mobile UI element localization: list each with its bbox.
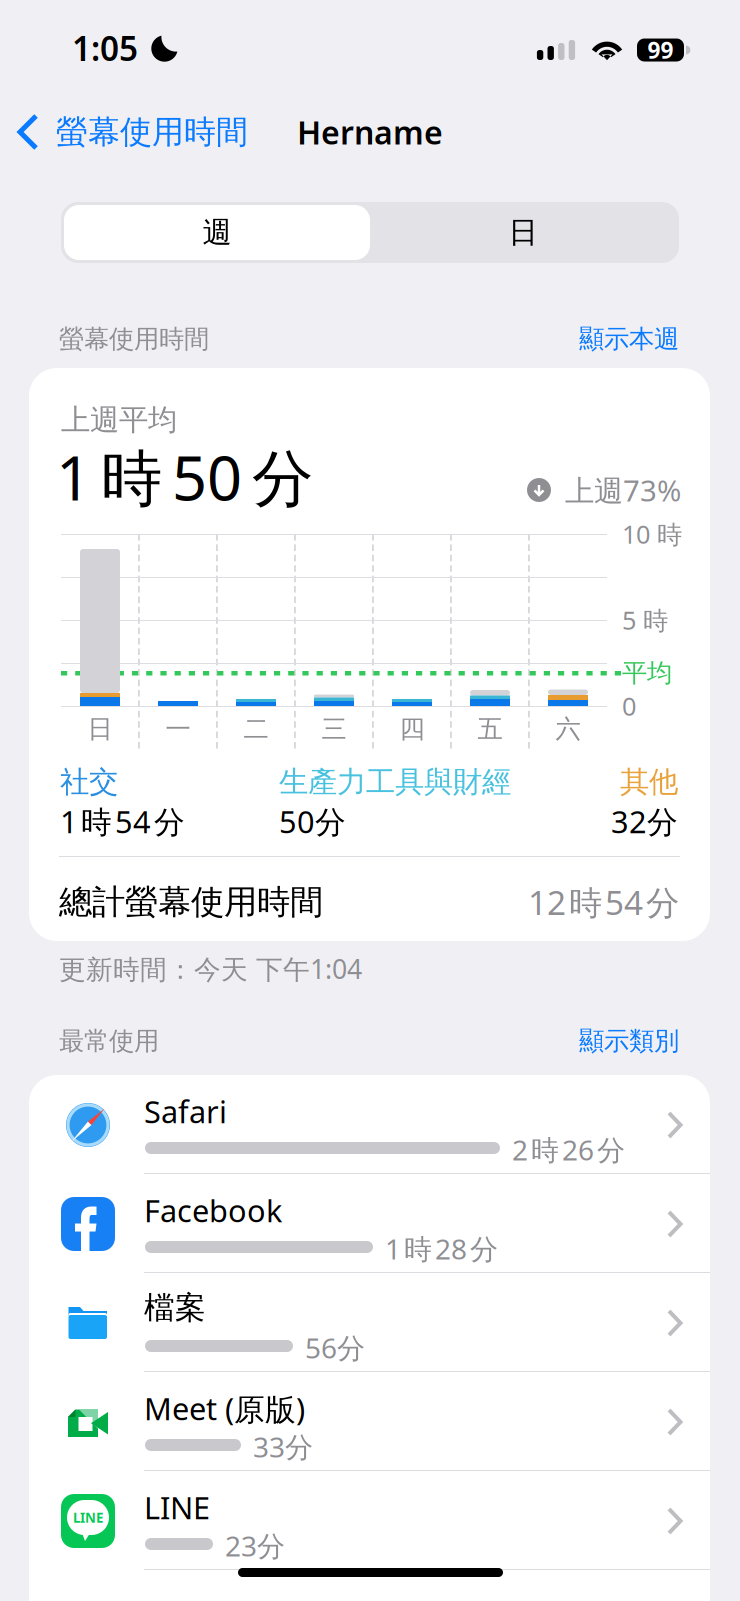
- staticText: 六: [555, 713, 580, 744]
- staticText: 50分: [279, 801, 346, 842]
- button[interactable]: 日: [370, 205, 676, 260]
- button[interactable]: 檔案: [29, 1273, 710, 1372]
- staticText: 上週73%: [565, 470, 681, 509]
- staticText: 23分: [225, 1527, 285, 1564]
- button[interactable]: 顯示類別: [579, 1025, 679, 1056]
- staticText: 5 時: [622, 603, 668, 637]
- staticText: Hername: [297, 111, 443, 153]
- staticText: Meet (原版): [144, 1388, 305, 1429]
- staticText: 二: [243, 713, 268, 744]
- button[interactable]: Facebook: [29, 1174, 710, 1273]
- staticText: 1 時 54 分: [60, 801, 185, 842]
- staticText: 33分: [253, 1428, 313, 1465]
- staticText: LINE: [73, 1509, 103, 1526]
- staticText: 平均: [622, 657, 672, 688]
- staticText: 99: [647, 35, 673, 65]
- staticText: Facebook: [144, 1190, 282, 1231]
- staticText: LINE: [144, 1487, 210, 1528]
- staticText: 顯示本週: [579, 323, 679, 354]
- button[interactable]: Meet (原版): [29, 1372, 710, 1471]
- staticText: 螢幕使用時間: [59, 323, 209, 354]
- staticText: 四: [399, 713, 424, 744]
- staticText: 生產力工具與財經: [279, 764, 511, 800]
- button[interactable]: Safari: [29, 1075, 710, 1174]
- staticText: 更新時間：今天 下午1:04: [59, 951, 362, 986]
- staticText: 日: [508, 214, 537, 250]
- staticText: 32分: [611, 801, 678, 842]
- staticText: 一: [165, 713, 190, 744]
- staticText: Safari: [144, 1091, 227, 1132]
- staticText: 螢幕使用時間: [56, 112, 248, 152]
- staticText: 五: [477, 713, 502, 744]
- staticText: 日: [87, 713, 112, 744]
- staticText: 10 時: [622, 517, 682, 551]
- staticText: 0: [622, 689, 636, 723]
- staticText: 12 時 54 分: [528, 880, 679, 924]
- staticText: 2 時 26 分: [512, 1131, 625, 1168]
- staticText: 檔案: [144, 1289, 206, 1327]
- button[interactable]: 螢幕使用時間: [0, 104, 248, 160]
- staticText: 其他: [620, 764, 678, 800]
- button[interactable]: 顯示本週: [579, 323, 679, 354]
- staticText: 1 時 50 分: [56, 436, 313, 517]
- staticText: 週: [202, 214, 231, 250]
- staticText: 上週平均: [61, 402, 177, 438]
- staticText: 1 時 28 分: [385, 1230, 498, 1267]
- staticText: 總計螢幕使用時間: [59, 882, 323, 923]
- staticText: 56分: [305, 1329, 365, 1366]
- staticText: 顯示類別: [579, 1025, 679, 1056]
- staticText: 三: [321, 713, 346, 744]
- button[interactable]: LINE: [29, 1471, 710, 1570]
- staticText: 最常使用: [59, 1025, 159, 1056]
- staticText: 社交: [60, 764, 118, 800]
- staticText: 1:05: [72, 26, 138, 70]
- button[interactable]: 週: [64, 205, 370, 260]
